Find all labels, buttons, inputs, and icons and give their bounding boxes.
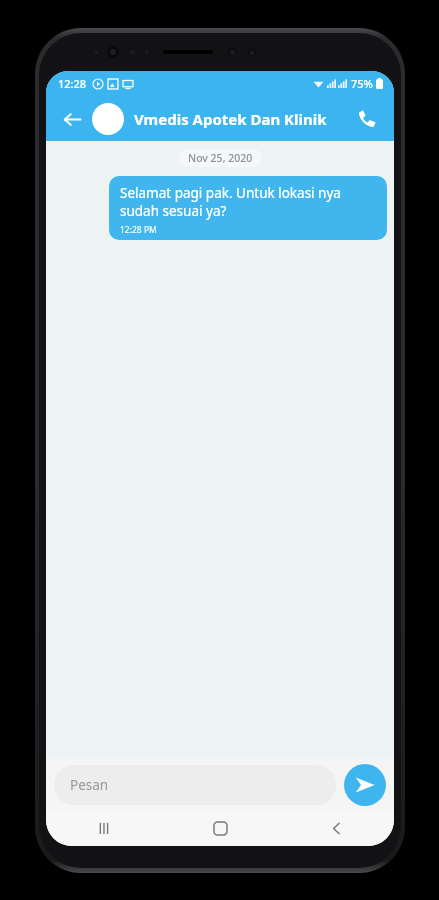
button[interactable]: Call [350,102,384,136]
button[interactable]: Send [344,764,386,806]
button[interactable]: Recent apps [82,810,126,846]
staticText: Nov 25, 2020 [188,151,253,165]
staticText: Selamat pagi pak. Untuk lokasi nya sudah… [120,184,376,220]
button[interactable]: Home [198,810,242,846]
staticText: 12:28 PM [120,224,376,236]
button[interactable]: Pesan [54,765,336,805]
button[interactable]: Selamat pagi pak. Untuk lokasi nya sudah… [109,176,387,240]
staticText: 75% [351,76,373,91]
button[interactable]: Back [56,103,88,135]
button[interactable]: Contact avatar [92,103,124,135]
staticText: Vmedis Apotek Dan Klinik [134,109,350,129]
staticText: Pesan [70,776,109,794]
staticText: 12:28 [58,76,87,91]
button[interactable]: Back [314,810,358,846]
